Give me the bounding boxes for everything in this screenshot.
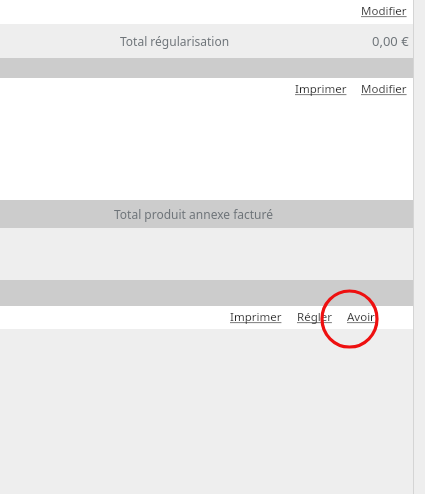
- staticText: Avoir: [347, 309, 375, 325]
- staticText: Imprimer: [230, 309, 282, 325]
- staticText: Modifier: [361, 3, 407, 19]
- button[interactable]: Modifier: [359, 0, 409, 22]
- button[interactable]: Modifier: [359, 78, 409, 100]
- button[interactable]: Imprimer: [228, 306, 284, 328]
- staticText: Imprimer: [295, 81, 347, 97]
- button[interactable]: Imprimer: [293, 78, 349, 100]
- button[interactable]: Régler: [295, 306, 334, 328]
- staticText: Total régularisation: [120, 33, 230, 49]
- staticText: 0,00 €: [372, 32, 409, 50]
- staticText: Total produit annexe facturé: [114, 206, 274, 222]
- button[interactable]: Avoir: [345, 306, 377, 328]
- staticText: Régler: [297, 309, 332, 325]
- staticText: Modifier: [361, 81, 407, 97]
